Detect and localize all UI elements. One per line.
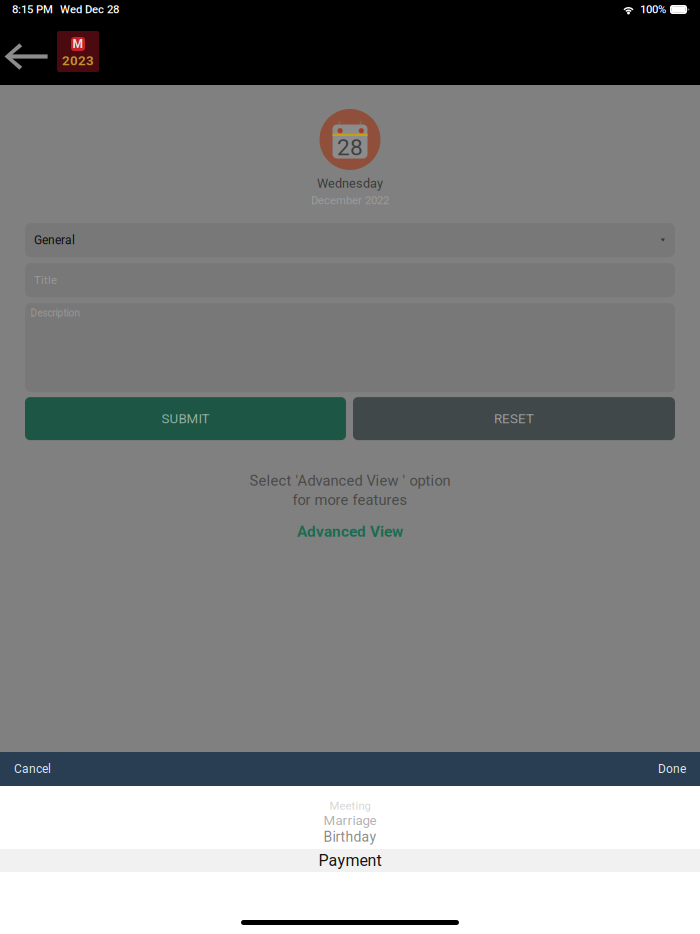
button[interactable]: Advanced View <box>297 521 403 541</box>
staticText: Payment <box>318 851 381 870</box>
staticText: Select 'Advanced View ' option <box>249 472 450 489</box>
staticText: M <box>72 37 83 51</box>
staticText: Birthday <box>323 829 376 845</box>
button[interactable]: Meeting <box>0 800 700 812</box>
button[interactable]: SUBMIT <box>25 397 346 440</box>
staticText: Wednesday <box>317 176 383 191</box>
staticText: SUBMIT <box>161 411 209 426</box>
staticText: General <box>34 233 75 247</box>
staticText: 100% <box>640 3 666 16</box>
button[interactable]: Back <box>3 44 55 70</box>
staticText: Advanced View <box>297 522 403 540</box>
button[interactable]: RESET <box>353 397 675 440</box>
staticText: Title <box>34 273 57 287</box>
staticText: RESET <box>494 411 534 426</box>
button[interactable]: Cancel <box>0 752 65 786</box>
staticText: December 2022 <box>311 194 389 207</box>
staticText: 28 <box>337 134 363 161</box>
staticText: Marriage <box>323 813 376 828</box>
button[interactable]: Birthday <box>0 829 700 845</box>
staticText: Wed Dec 28 <box>60 3 119 16</box>
staticText: Description <box>30 307 80 319</box>
button[interactable]: Open Muhurat 2023 <box>57 31 99 72</box>
staticText: Meeting <box>329 799 370 813</box>
staticText: 2023 <box>62 53 94 69</box>
button[interactable]: Marriage <box>0 813 700 828</box>
staticText: for more features <box>292 491 407 508</box>
staticText: Done <box>658 762 686 776</box>
button[interactable]: Done <box>644 752 700 786</box>
staticText: 8:15 PM <box>12 3 53 16</box>
button[interactable]: Payment <box>0 849 700 872</box>
staticText: Cancel <box>14 762 51 776</box>
button[interactable]: General <box>25 223 675 257</box>
